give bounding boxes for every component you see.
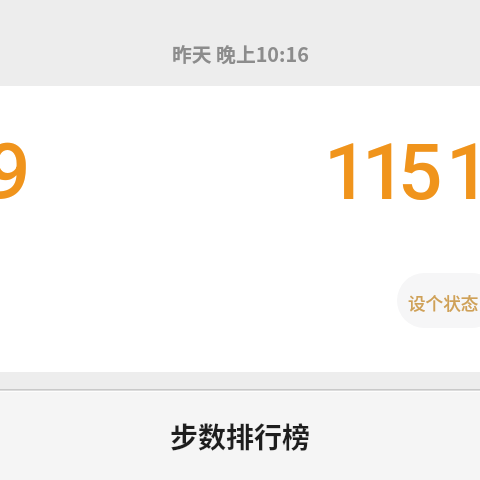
staticText: 5	[398, 127, 443, 218]
button[interactable]: 设个状态	[397, 273, 480, 328]
staticText: 步数排行榜	[170, 416, 311, 457]
staticText: 设个状态	[408, 290, 479, 315]
staticText: 1	[324, 127, 369, 218]
button[interactable]: 步数排行榜	[0, 392, 480, 480]
staticText: 1	[446, 127, 480, 218]
staticText: 9	[0, 127, 31, 218]
button[interactable]: 9	[0, 86, 480, 372]
staticText: 昨天 晚上10:16	[172, 39, 309, 68]
staticText: 1	[362, 127, 407, 218]
